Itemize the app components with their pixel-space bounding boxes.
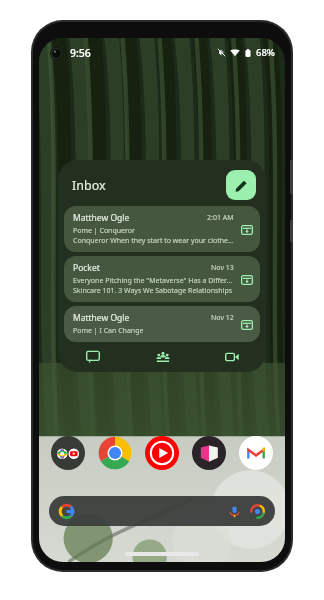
staticText: Pome | I Can Change — [73, 326, 144, 336]
button[interactable]: Compose — [226, 170, 256, 200]
button[interactable]: Voice search — [227, 504, 242, 519]
button[interactable]: Archive — [240, 318, 253, 331]
staticText: 68% — [256, 46, 275, 59]
staticText: 9:56 — [70, 46, 91, 60]
staticText: Matthew Ogle — [73, 312, 211, 324]
button[interactable]: Meet people — [128, 342, 197, 372]
staticText: Skincare 101. 3 Ways We Sabotage Relatio… — [73, 286, 233, 296]
button[interactable]: Apps folder — [51, 436, 85, 470]
button[interactable]: Archive — [240, 273, 253, 286]
button[interactable]: Voice search — [49, 496, 275, 526]
staticText: Matthew Ogle — [73, 212, 207, 224]
staticText: Nov 13 — [211, 263, 234, 273]
button[interactable]: Chrome — [98, 436, 132, 470]
staticText: Pome | Conqueror — [73, 226, 135, 236]
staticText: Inbox — [72, 177, 106, 194]
button[interactable]: Chat — [58, 342, 128, 372]
staticText: 2:01 AM — [207, 213, 234, 223]
button[interactable]: Gmail — [239, 436, 273, 470]
button[interactable]: Video call — [197, 342, 266, 372]
staticText: Everyone Pitching the "Metaverse" Has a … — [73, 276, 234, 286]
button[interactable]: Matthew Ogle — [64, 206, 260, 252]
staticText: Conqueror When they start to wear your c… — [73, 236, 234, 246]
button[interactable]: Matthew Ogle — [64, 306, 260, 342]
button[interactable]: Pocket — [64, 256, 260, 302]
button[interactable]: Google Lens — [250, 504, 265, 519]
staticText: Nov 12 — [211, 313, 234, 323]
button[interactable]: Archive — [240, 223, 253, 236]
button[interactable]: YouTube Music — [145, 436, 179, 470]
button[interactable]: Play Books — [192, 436, 226, 470]
staticText: Pocket — [73, 262, 211, 274]
